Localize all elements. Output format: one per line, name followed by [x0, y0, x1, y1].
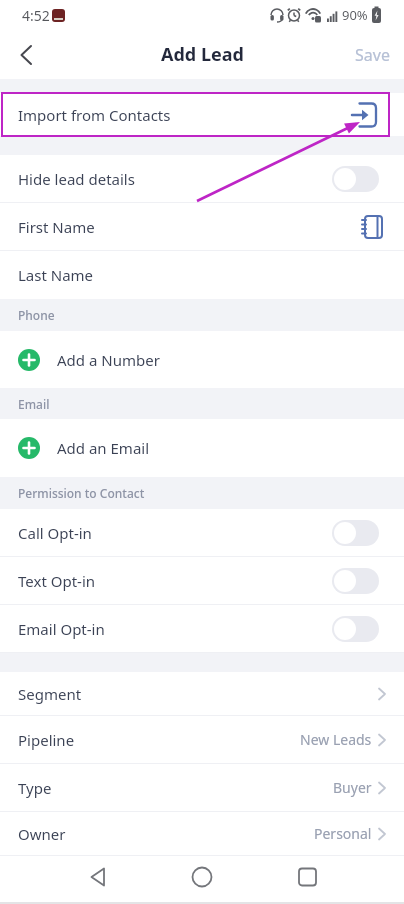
- staticText: Personal: [314, 824, 372, 843]
- staticText: Import from Contacts: [18, 105, 171, 125]
- staticText: Text Opt-in: [18, 571, 96, 591]
- staticText: 90%: [342, 6, 368, 24]
- staticText: Buyer: [333, 778, 372, 797]
- staticText: Permission to Contact: [18, 485, 145, 501]
- staticText: Segment: [18, 684, 82, 704]
- staticText: Type: [18, 778, 52, 798]
- staticText: Pipeline: [18, 730, 75, 750]
- staticText: Phone: [18, 307, 55, 323]
- staticText: Email Opt-in: [18, 619, 105, 639]
- staticText: 4:52: [22, 6, 50, 25]
- staticText: Hide lead details: [18, 169, 135, 189]
- staticText: Email: [18, 396, 50, 412]
- staticText: Save: [355, 44, 390, 66]
- staticText: First Name: [18, 217, 95, 237]
- staticText: New Leads: [300, 730, 372, 749]
- staticText: Call Opt-in: [18, 523, 92, 543]
- staticText: Add an Email: [57, 438, 150, 458]
- staticText: Owner: [18, 824, 66, 844]
- staticText: Add Lead: [161, 42, 244, 67]
- staticText: Last Name: [18, 265, 94, 285]
- staticText: Add a Number: [57, 350, 160, 370]
